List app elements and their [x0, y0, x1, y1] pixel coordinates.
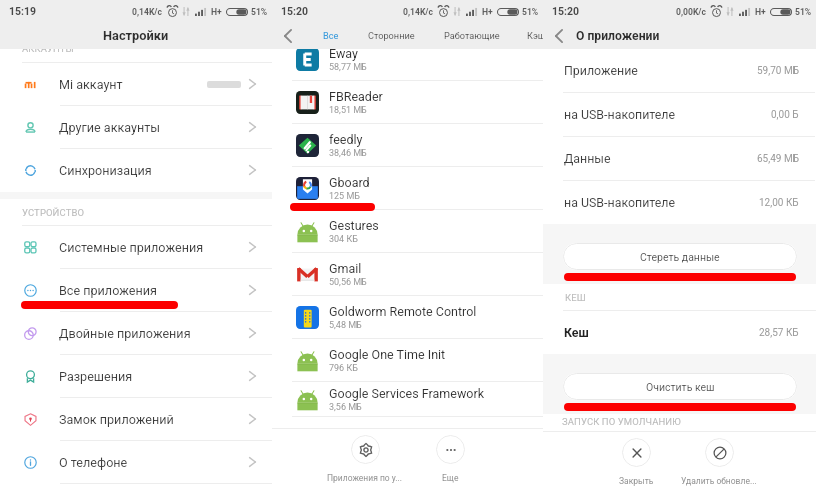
staticText: Данные	[564, 151, 611, 166]
button[interactable]: Google One Time Init	[272, 339, 543, 382]
button[interactable]: Очистить кеш	[563, 373, 797, 400]
staticText: Двойные приложения	[59, 326, 191, 341]
staticText: Приложения по у...	[327, 473, 403, 483]
staticText: 18,51 МБ	[329, 105, 367, 116]
button[interactable]: FBReader	[272, 81, 543, 124]
staticText: на USB-накопителе	[564, 195, 676, 210]
staticText: 796 КБ	[329, 363, 358, 374]
staticText: Сторонние	[368, 30, 415, 41]
staticText: УСТРОЙСТВО	[22, 207, 85, 218]
staticText: 51%	[795, 7, 812, 17]
button[interactable]: Mi аккаунт	[0, 63, 272, 106]
button[interactable]: Eway	[272, 49, 543, 81]
button[interactable]: Goldworm Remote Control	[272, 296, 543, 339]
button[interactable]: feedly	[272, 124, 543, 167]
staticText: 125 МБ	[329, 191, 360, 202]
staticText: КЕШ	[565, 292, 586, 303]
staticText: Другие аккаунты	[59, 120, 161, 135]
button[interactable]: Системные приложения	[0, 226, 272, 269]
button[interactable]: Google Services Framework	[272, 382, 543, 417]
staticText: 65,49 МБ	[757, 153, 799, 165]
staticText: H+	[755, 7, 766, 17]
button[interactable]: Close	[601, 432, 671, 492]
button[interactable]: Back	[545, 22, 573, 49]
button[interactable]: Gmail	[272, 253, 543, 296]
button[interactable]: Другие аккаунты	[0, 106, 272, 149]
staticText: 15:20	[552, 5, 580, 17]
button[interactable]: Разрешения	[0, 355, 272, 398]
staticText: Системные приложения	[59, 240, 204, 255]
button[interactable]: на USB-накопителе	[543, 181, 816, 224]
staticText: 38,46 МБ	[329, 148, 367, 159]
button[interactable]: Back	[274, 22, 302, 49]
staticText: 59,70 МБ	[757, 65, 799, 77]
button[interactable]: Стереть данные	[563, 243, 797, 270]
staticText: Приложение	[564, 63, 638, 78]
staticText: 50,56 МБ	[329, 277, 367, 288]
button[interactable]: Default apps	[320, 429, 410, 492]
staticText: Gestures	[329, 218, 379, 233]
staticText: Очистить кеш	[646, 381, 715, 393]
staticText: Mi аккаунт	[59, 77, 123, 92]
staticText: Goldworm Remote Control	[329, 304, 477, 319]
staticText: Синхронизация	[59, 163, 152, 178]
staticText: Eway	[329, 49, 358, 61]
button[interactable]: Синхронизация	[0, 149, 272, 192]
staticText: О приложении	[576, 29, 660, 43]
staticText: Все приложения	[59, 283, 157, 298]
button[interactable]: Сторонние	[368, 26, 415, 45]
button[interactable]: Двойные приложения	[0, 312, 272, 355]
button[interactable]: Uninstall updates	[674, 432, 764, 492]
staticText: H+	[482, 7, 493, 17]
staticText: 28,57 КБ	[759, 327, 799, 339]
staticText: 51%	[251, 7, 268, 17]
staticText: Еще	[442, 473, 459, 483]
button[interactable]: Работающие	[444, 26, 500, 45]
staticText: ЗАПУСК ПО УМОЛЧАНИЮ	[562, 416, 681, 427]
button[interactable]: Данные	[543, 137, 816, 181]
button[interactable]: Gboard	[272, 167, 543, 210]
staticText: 12,00 КБ	[759, 197, 799, 209]
staticText: 3,56 МБ	[329, 402, 362, 413]
staticText: Удалить обновле...	[681, 476, 757, 486]
staticText: Закрыть	[619, 476, 654, 486]
staticText: Все	[323, 30, 339, 41]
staticText: 0,14K/c	[403, 7, 434, 17]
staticText: 304 КБ	[329, 234, 358, 245]
staticText: Кеш	[564, 325, 589, 340]
button[interactable]: Замок приложений	[0, 398, 272, 441]
staticText: Gmail	[329, 261, 362, 276]
staticText: FBReader	[329, 89, 383, 104]
staticText: 0,00K/c	[676, 7, 707, 17]
staticText: Замок приложений	[59, 412, 174, 427]
staticText: Кэш	[527, 30, 543, 41]
staticText: 58,77 МБ	[329, 62, 367, 73]
staticText: Настройки	[103, 28, 169, 43]
staticText: Gboard	[329, 175, 370, 190]
button[interactable]: О телефоне	[0, 441, 272, 484]
button[interactable]: на USB-накопителе	[543, 93, 816, 137]
button[interactable]: Кэш	[527, 26, 543, 45]
staticText: feedly	[329, 132, 363, 147]
button[interactable]: Gestures	[272, 210, 543, 253]
staticText: 15:20	[281, 5, 309, 17]
staticText: 0,00 Б	[771, 109, 799, 121]
button[interactable]: More	[419, 429, 481, 492]
button[interactable]: Все	[323, 26, 339, 45]
button[interactable]: Кеш	[543, 311, 816, 354]
staticText: АККАУНТЫ	[22, 49, 74, 54]
staticText: 5,48 МБ	[329, 320, 362, 331]
button[interactable]: Все приложения	[0, 269, 272, 312]
staticText: Разрешения	[59, 369, 133, 384]
staticText: О телефоне	[59, 455, 128, 470]
staticText: 51%	[522, 7, 539, 17]
staticText: 15:19	[9, 5, 37, 17]
button[interactable]: Приложение	[543, 49, 816, 93]
staticText: Стереть данные	[640, 251, 720, 263]
staticText: Google Services Framework	[329, 386, 484, 401]
staticText: на USB-накопителе	[564, 107, 676, 122]
staticText: Google One Time Init	[329, 347, 446, 362]
staticText: Работающие	[444, 30, 500, 41]
staticText: H+	[211, 7, 222, 17]
staticText: 0,14K/c	[132, 7, 163, 17]
